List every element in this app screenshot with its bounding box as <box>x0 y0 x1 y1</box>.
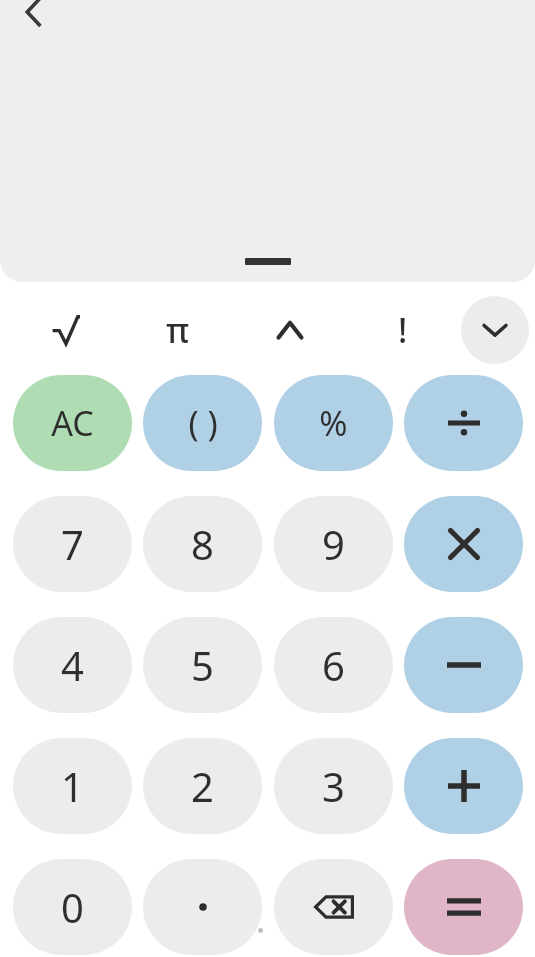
staticText: 9 <box>322 517 345 571</box>
staticText: 8 <box>191 517 214 571</box>
staticText: 6 <box>322 638 345 692</box>
button[interactable]: Decimal point <box>143 859 262 955</box>
button[interactable]: 7 <box>13 496 132 592</box>
button[interactable]: 3 <box>274 738 393 834</box>
button[interactable]: 2 <box>143 738 262 834</box>
button[interactable]: Back <box>6 0 62 40</box>
button[interactable]: 6 <box>274 617 393 713</box>
button[interactable]: Divide <box>404 375 523 471</box>
staticText: AC <box>51 400 94 446</box>
button[interactable]: 4 <box>13 617 132 713</box>
button[interactable]: Square root <box>22 298 110 362</box>
staticText: 3 <box>322 759 345 813</box>
button[interactable]: Backspace <box>274 859 393 955</box>
staticText: 5 <box>191 638 214 692</box>
staticText: ( ) <box>188 400 218 446</box>
button[interactable]: Power <box>246 298 334 362</box>
button[interactable]: ( ) <box>143 375 262 471</box>
button[interactable]: 9 <box>274 496 393 592</box>
staticText: 0 <box>61 880 84 934</box>
staticText: ! <box>398 307 408 353</box>
button[interactable]: Factorial <box>359 298 447 362</box>
button[interactable]: Pi <box>134 298 222 362</box>
button[interactable]: Equals <box>404 859 523 955</box>
staticText: 7 <box>61 517 84 571</box>
button[interactable]: Collapse display <box>245 258 291 265</box>
button[interactable]: AC <box>13 375 132 471</box>
button[interactable]: More functions <box>461 296 529 364</box>
staticText: 4 <box>61 638 84 692</box>
button[interactable]: Add <box>404 738 523 834</box>
button[interactable]: 8 <box>143 496 262 592</box>
button[interactable]: 5 <box>143 617 262 713</box>
button[interactable]: 1 <box>13 738 132 834</box>
staticText: 1 <box>61 759 84 813</box>
button[interactable]: % <box>274 375 393 471</box>
button[interactable]: Subtract <box>404 617 523 713</box>
staticText: π <box>166 307 190 353</box>
staticText: % <box>319 400 348 446</box>
button[interactable]: 0 <box>13 859 132 955</box>
button[interactable]: Multiply <box>404 496 523 592</box>
staticText: 2 <box>191 759 214 813</box>
